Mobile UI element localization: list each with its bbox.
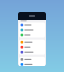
button[interactable] [19,45,45,50]
button[interactable] [19,27,45,32]
button[interactable] [19,40,45,45]
button[interactable] [19,22,45,27]
button[interactable] [19,57,45,62]
button[interactable] [19,32,45,37]
button[interactable] [19,62,45,67]
button[interactable] [19,50,45,55]
